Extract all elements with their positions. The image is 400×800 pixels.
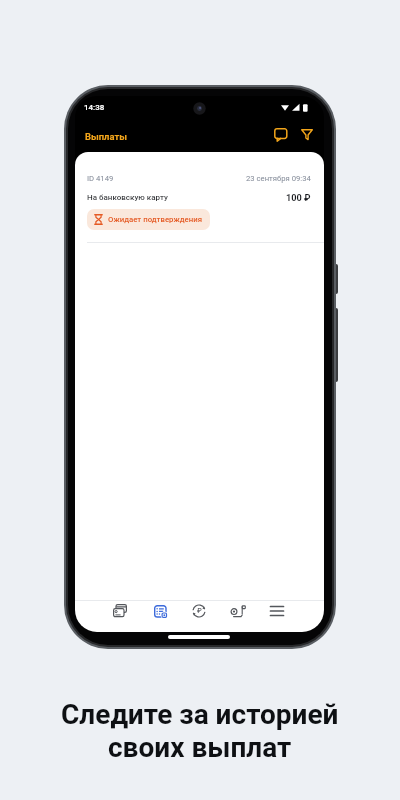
button[interactable] <box>271 124 291 146</box>
staticText: 100 ₽ <box>286 192 311 203</box>
button[interactable] <box>106 596 134 626</box>
staticText: 14:38 <box>84 103 105 112</box>
button[interactable]: ID 4149 <box>75 152 324 243</box>
button[interactable]: ₽ <box>185 596 213 626</box>
staticText: своих выплат <box>108 731 292 764</box>
button[interactable] <box>297 124 317 146</box>
staticText: ID 4149 <box>87 174 114 183</box>
staticText: Следите за историей <box>61 698 339 731</box>
button[interactable] <box>263 596 291 626</box>
staticText: Ожидает подтверждения <box>108 215 203 224</box>
staticText: На банковскую карту <box>87 193 168 202</box>
staticText: Выплаты <box>85 131 127 142</box>
staticText: ₽ <box>197 607 202 615</box>
button[interactable] <box>224 596 252 626</box>
button[interactable] <box>146 596 174 626</box>
staticText: 23 сентября 09:34 <box>246 174 311 183</box>
